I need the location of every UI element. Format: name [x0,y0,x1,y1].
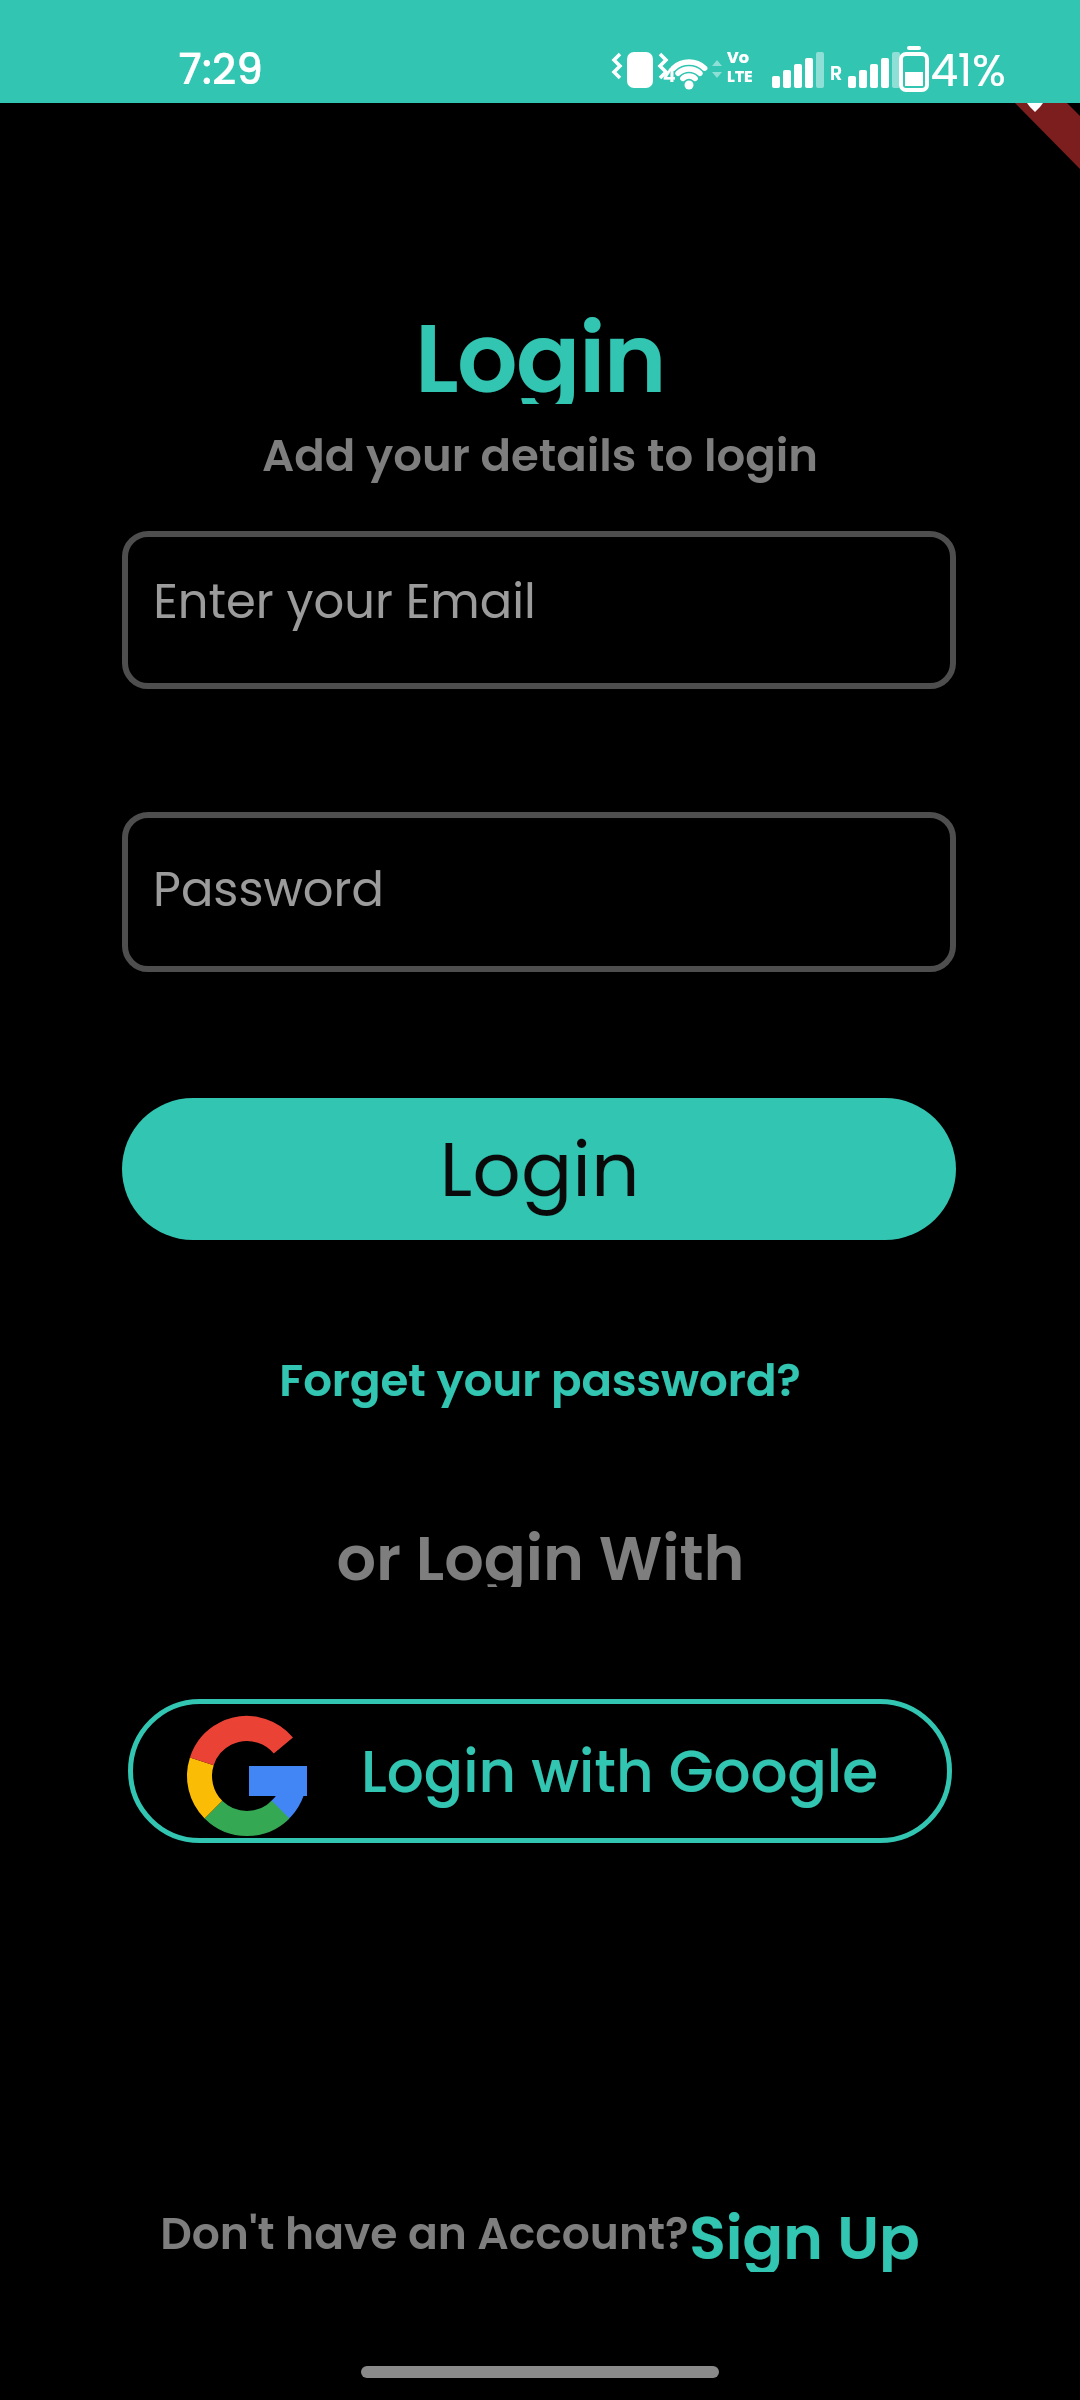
staticText: Sign Up [689,2196,920,2272]
staticText: Forget your password? [279,1349,801,1409]
staticText: Login [415,292,665,404]
staticText: Don't have an Account? [160,2203,689,2265]
staticText: or Login With [336,1515,745,1587]
button[interactable]: Login with Google [128,1699,952,1843]
button[interactable]: Don't have an Account? [0,2196,1080,2272]
staticText: Vo LTE [727,46,753,88]
staticText: 7:29 [178,40,263,96]
staticText: R [830,60,843,87]
button[interactable]: Login [122,1098,956,1240]
staticText: 41% [930,40,1006,96]
staticText: Password [153,856,384,923]
staticText: Login with Google [361,1731,878,1812]
staticText: Login [439,1116,640,1222]
button[interactable]: Forget your password? [0,1349,1080,1409]
staticText: Enter your Email [153,568,536,635]
button[interactable]: Password [122,812,956,972]
staticText: Add your details to login [262,424,818,484]
staticText: 4 [663,62,676,89]
button[interactable]: Enter your Email [122,531,956,689]
